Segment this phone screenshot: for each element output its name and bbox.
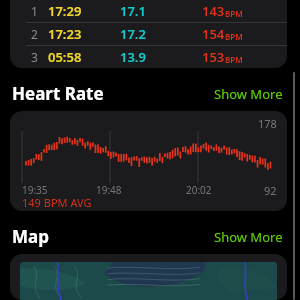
staticText: 154: [202, 25, 225, 43]
staticText: 20:02: [186, 183, 212, 197]
staticText: 05:58: [48, 48, 82, 66]
staticText: 17.1: [120, 2, 146, 20]
staticText: 3: [31, 49, 38, 65]
button[interactable]: Show More: [214, 228, 283, 246]
staticText: 17:29: [48, 2, 82, 20]
staticText: Show More: [214, 228, 283, 246]
staticText: 1: [31, 3, 38, 19]
staticText: 13.9: [120, 48, 146, 66]
button[interactable]: 178: [10, 111, 287, 211]
staticText: BPM: [225, 54, 243, 65]
staticText: 19:48: [96, 183, 122, 197]
staticText: 153: [202, 48, 225, 66]
staticText: 92: [264, 183, 277, 198]
staticText: Heart Rate: [12, 82, 104, 105]
button[interactable]: 3: [10, 46, 287, 68]
staticText: BPM: [225, 31, 243, 42]
staticText: Show More: [214, 85, 283, 103]
button[interactable]: 1: [10, 0, 287, 22]
other: Route map: [20, 262, 277, 300]
button[interactable]: 2: [10, 23, 287, 45]
staticText: BPM: [225, 8, 243, 19]
button[interactable]: 1: [10, 0, 287, 68]
staticText: 17:23: [48, 25, 82, 43]
staticText: 19:35: [22, 183, 48, 197]
staticText: 149 BPM AVG: [22, 195, 92, 210]
staticText: 143: [202, 2, 225, 20]
staticText: 17.2: [120, 25, 146, 43]
button[interactable]: Show More: [214, 85, 283, 103]
staticText: 178: [258, 116, 277, 131]
staticText: 2: [31, 26, 38, 42]
staticText: Map: [12, 225, 49, 248]
button[interactable]: Route map: [10, 254, 287, 300]
